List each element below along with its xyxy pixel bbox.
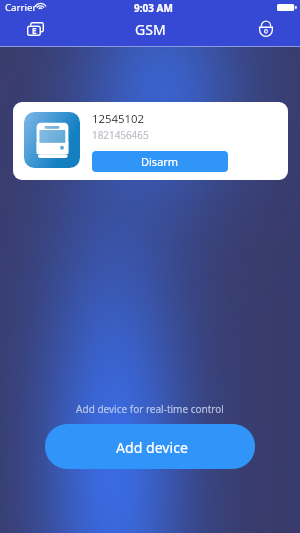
staticText: Carrier <box>5 1 37 14</box>
staticText: GSM <box>135 20 166 39</box>
button[interactable]: Devices <box>23 17 47 41</box>
staticText: 9:03 AM <box>134 1 173 15</box>
button[interactable]: Disarm <box>92 151 228 172</box>
button[interactable]: Lock <box>254 16 278 40</box>
staticText: Add device for real-time control <box>76 402 224 416</box>
button[interactable]: Add device <box>45 424 255 469</box>
staticText: E <box>32 25 37 36</box>
button[interactable]: 12545102 <box>13 102 288 180</box>
staticText: Add device <box>116 438 188 457</box>
staticText: Disarm <box>141 154 179 169</box>
staticText: 1821456465 <box>92 128 149 141</box>
staticText: 12545102 <box>92 111 145 127</box>
